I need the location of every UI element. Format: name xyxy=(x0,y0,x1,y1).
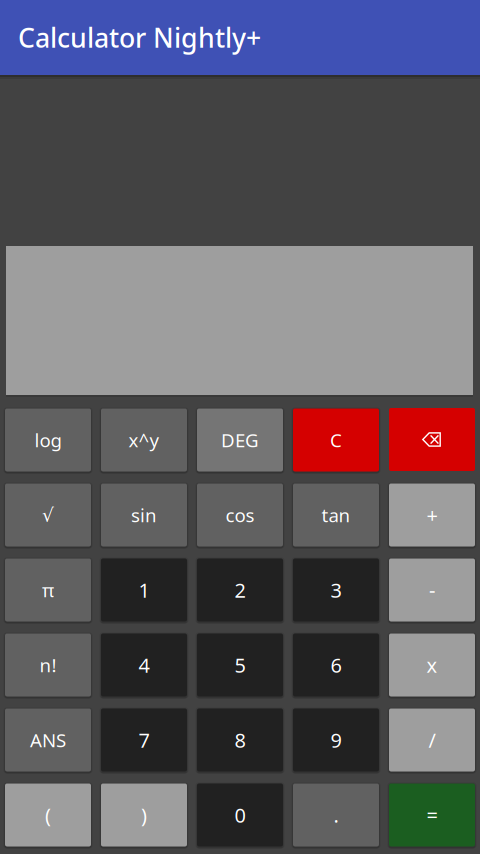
button[interactable]: C xyxy=(293,408,379,471)
button[interactable]: 8 xyxy=(197,708,283,771)
button[interactable]: π xyxy=(5,558,91,621)
button[interactable]: n! xyxy=(5,633,91,696)
button[interactable]: 2 xyxy=(197,558,283,621)
button[interactable]: cos xyxy=(197,483,283,546)
button[interactable]: ANS xyxy=(5,708,91,771)
staticText: 4 xyxy=(138,652,149,678)
staticText: 3 xyxy=(330,577,341,603)
staticText: 7 xyxy=(138,727,149,753)
button[interactable]: 5 xyxy=(197,633,283,696)
button[interactable]: 7 xyxy=(101,708,187,771)
staticText: n! xyxy=(39,653,56,677)
button[interactable]: + xyxy=(389,483,475,546)
staticText: Calculator Nightly+ xyxy=(18,20,261,55)
button[interactable]: x xyxy=(389,633,475,696)
button[interactable]: DEG xyxy=(197,408,283,471)
button[interactable]: = xyxy=(389,783,475,846)
staticText: + xyxy=(426,502,437,528)
button[interactable]: x^y xyxy=(101,408,187,471)
button[interactable]: 4 xyxy=(101,633,187,696)
staticText: ( xyxy=(45,802,51,828)
staticText: = xyxy=(426,802,437,828)
staticText: cos xyxy=(225,503,254,527)
staticText: sin xyxy=(131,503,157,527)
staticText: 1 xyxy=(138,577,149,603)
button[interactable]: / xyxy=(389,708,475,771)
button[interactable]: 0 xyxy=(197,783,283,846)
staticText: DEG xyxy=(221,428,259,452)
staticText: log xyxy=(34,428,61,452)
staticText: 2 xyxy=(234,577,245,603)
staticText: 6 xyxy=(330,652,341,678)
staticText: 0 xyxy=(234,802,245,828)
staticText: - xyxy=(429,577,435,603)
button[interactable]: 1 xyxy=(101,558,187,621)
button[interactable]: - xyxy=(389,558,475,621)
staticText: 5 xyxy=(234,652,245,678)
button[interactable]: Backspace xyxy=(389,408,475,471)
button[interactable]: sin xyxy=(101,483,187,546)
button[interactable]: 3 xyxy=(293,558,379,621)
button[interactable]: ) xyxy=(101,783,187,846)
staticText: / xyxy=(428,727,435,753)
staticText: tan xyxy=(321,503,350,527)
staticText: x xyxy=(426,652,437,678)
staticText: π xyxy=(42,578,54,602)
button[interactable]: tan xyxy=(293,483,379,546)
staticText: 9 xyxy=(330,727,341,753)
staticText: √ xyxy=(42,504,54,526)
staticText: x^y xyxy=(128,428,159,452)
button[interactable]: 9 xyxy=(293,708,379,771)
button[interactable]: √ xyxy=(5,483,91,546)
staticText: C xyxy=(330,428,342,452)
staticText: ) xyxy=(141,802,147,828)
button[interactable]: ( xyxy=(5,783,91,846)
button[interactable]: 6 xyxy=(293,633,379,696)
staticText: . xyxy=(333,802,338,828)
staticText: 8 xyxy=(234,727,245,753)
button[interactable]: . xyxy=(293,783,379,846)
button[interactable]: log xyxy=(5,408,91,471)
staticText: ANS xyxy=(30,728,66,752)
